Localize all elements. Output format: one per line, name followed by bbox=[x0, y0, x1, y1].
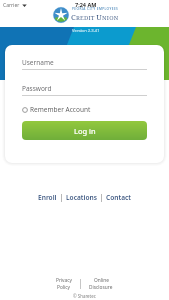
staticText: Policy bbox=[57, 284, 71, 291]
staticText: Remember Account bbox=[30, 105, 91, 114]
button[interactable]: Privacy bbox=[56, 277, 72, 291]
button[interactable]: Contact bbox=[106, 193, 132, 202]
staticText: Carrier bbox=[3, 2, 20, 9]
staticText: © Sharetec bbox=[73, 293, 96, 299]
staticText: Online bbox=[94, 277, 109, 284]
button[interactable]: Online bbox=[89, 277, 113, 291]
staticText: CREDIT UNION bbox=[71, 12, 119, 23]
staticText: Version 2.3.41 bbox=[72, 28, 100, 34]
staticText: Password bbox=[22, 84, 52, 93]
staticText: 7:24 AM bbox=[75, 1, 97, 8]
staticText: Disclosure bbox=[89, 284, 113, 291]
button[interactable]: Locations bbox=[66, 193, 97, 202]
staticText: Log in bbox=[74, 126, 96, 136]
button[interactable]: Remember Account bbox=[22, 105, 91, 114]
staticText: PEORIA CITY EMPLOYEES bbox=[72, 7, 119, 11]
button[interactable]: Enroll bbox=[38, 193, 57, 202]
button[interactable]: Log in bbox=[22, 121, 147, 140]
staticText: Privacy bbox=[56, 277, 72, 284]
staticText: Username bbox=[22, 58, 54, 67]
